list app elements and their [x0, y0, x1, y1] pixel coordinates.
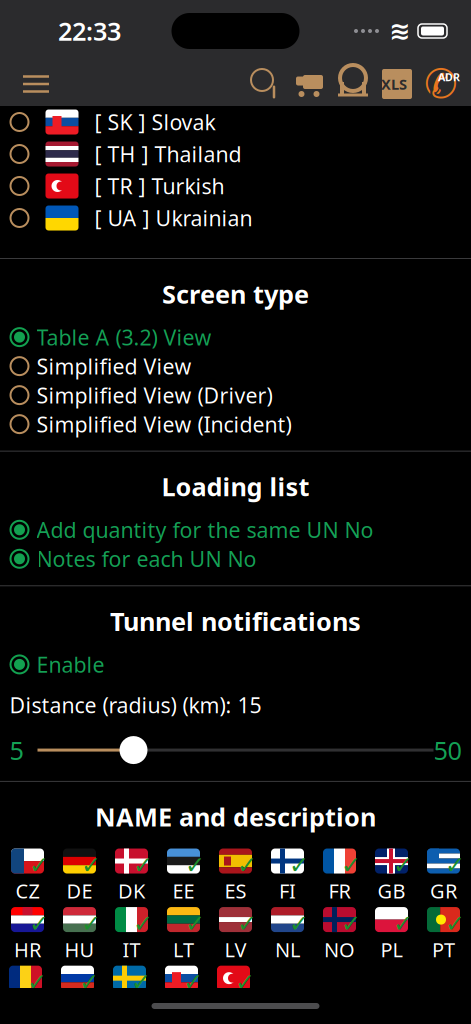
staticText: ✓ — [393, 851, 413, 878]
staticText: Screen type — [162, 277, 309, 311]
staticText: FR — [328, 877, 350, 904]
staticText: [ TH ] Thailand — [94, 140, 241, 168]
button[interactable]: ✓ — [53, 904, 105, 963]
staticText: Distance (radius) (km): 15 — [9, 691, 261, 719]
staticText: ✓ — [235, 968, 255, 996]
staticText: IT — [122, 936, 140, 963]
staticText: GB — [377, 877, 405, 904]
button[interactable]: [ TR ] Turkish — [0, 170, 471, 202]
staticText: ✓ — [393, 910, 413, 937]
button[interactable]: Tunnel — [331, 62, 375, 106]
staticText: 50 — [433, 733, 461, 767]
button[interactable]: Menu — [14, 62, 58, 106]
staticText: ✓ — [29, 851, 49, 878]
button[interactable]: Table A (3.2) View — [0, 323, 471, 352]
button[interactable]: ✓ — [261, 904, 313, 963]
staticText: Simplified View (Driver) — [36, 381, 272, 409]
staticText: [ UA ] Ukrainian — [94, 204, 252, 232]
staticText: ✓ — [79, 968, 99, 996]
button[interactable]: ✓ — [207, 963, 259, 1021]
button[interactable]: Enable — [0, 650, 471, 679]
button[interactable]: ✓ — [155, 963, 207, 1021]
button[interactable]: ✓ — [157, 845, 209, 904]
button[interactable]: ✓ — [313, 845, 365, 904]
staticText: ✓ — [445, 910, 465, 937]
button[interactable]: Vehicle — [287, 62, 331, 106]
staticText: NL — [275, 936, 300, 963]
button[interactable]: Export XLS — [375, 62, 419, 106]
button[interactable]: Search — [245, 62, 287, 106]
button[interactable]: [ TH ] Thailand — [0, 138, 471, 170]
staticText: ADR — [438, 70, 460, 84]
button[interactable]: [ UA ] Ukrainian — [0, 202, 471, 234]
button[interactable]: ✓ — [157, 904, 209, 963]
staticText: ✓ — [133, 910, 153, 937]
button[interactable]: ✓ — [53, 845, 105, 904]
staticText: DK — [118, 877, 145, 904]
staticText: ✓ — [289, 910, 309, 937]
button[interactable]: ✓ — [261, 845, 313, 904]
button[interactable]: ADR call — [419, 62, 463, 106]
button[interactable]: ✓ — [313, 904, 365, 963]
staticText: ✓ — [81, 851, 101, 878]
button[interactable]: [ SK ] Slovak — [0, 106, 471, 138]
staticText: ✓ — [341, 910, 361, 937]
button[interactable]: ✓ — [103, 963, 155, 1021]
button[interactable]: ✓ — [417, 904, 469, 963]
button[interactable]: ✓ — [417, 845, 469, 904]
button[interactable]: Simplified View — [0, 352, 471, 381]
staticText: LT — [173, 936, 194, 963]
button[interactable]: Simplified View (Driver) — [0, 381, 471, 410]
button[interactable]: ✓ — [1, 904, 53, 963]
staticText: Enable — [36, 650, 104, 679]
staticText: ✓ — [183, 968, 203, 996]
staticText: Tunnel notifications — [110, 604, 361, 638]
staticText: Add quantity for the same UN No — [36, 516, 373, 544]
staticText: EE — [172, 877, 194, 904]
button[interactable]: ✓ — [0, 963, 51, 1021]
staticText: Notes for each UN No — [36, 545, 256, 573]
staticText: Loading list — [161, 470, 309, 503]
staticText: CZ — [15, 877, 39, 904]
staticText: HU — [64, 936, 94, 963]
staticText: NAME and description — [95, 800, 376, 833]
button[interactable]: ✓ — [209, 904, 261, 963]
staticText: XLS — [381, 74, 407, 94]
staticText: ✓ — [29, 910, 49, 937]
button[interactable]: ✓ — [105, 845, 157, 904]
button[interactable]: Simplified View (Incident) — [0, 410, 471, 439]
button[interactable]: ✓ — [105, 904, 157, 963]
staticText: SK — [170, 995, 193, 1021]
button[interactable]: ✓ — [51, 963, 103, 1021]
staticText: 22:33 — [58, 14, 121, 48]
staticText: TR — [222, 995, 245, 1021]
staticText: ✓ — [289, 851, 309, 878]
staticText: ✓ — [131, 968, 151, 996]
staticText: LV — [224, 936, 246, 963]
staticText: ✆ — [424, 61, 458, 107]
staticText: ✓ — [185, 851, 205, 878]
button[interactable]: ✓ — [1, 845, 53, 904]
staticText: 5 — [9, 733, 23, 767]
staticText: GR — [430, 877, 457, 904]
button[interactable]: Notes for each UN No — [0, 544, 471, 573]
staticText: ✓ — [81, 910, 101, 937]
staticText: FI — [279, 877, 296, 904]
staticText: ✓ — [445, 851, 465, 878]
button[interactable]: ✓ — [365, 904, 417, 963]
button[interactable]: Add quantity for the same UN No — [0, 515, 471, 544]
staticText: ✓ — [341, 851, 361, 878]
staticText: ✓ — [185, 910, 205, 937]
staticText: ES — [224, 877, 246, 904]
staticText: Table A (3.2) View — [36, 323, 211, 351]
staticText: ✓ — [133, 851, 153, 878]
staticText: ✓ — [27, 968, 47, 996]
staticText: ✓ — [237, 851, 257, 878]
button[interactable]: ✓ — [365, 845, 417, 904]
staticText: ≋ — [389, 17, 410, 45]
staticText: [ TR ] Turkish — [94, 172, 224, 200]
button[interactable]: ✓ — [209, 845, 261, 904]
staticText: DE — [66, 877, 92, 904]
